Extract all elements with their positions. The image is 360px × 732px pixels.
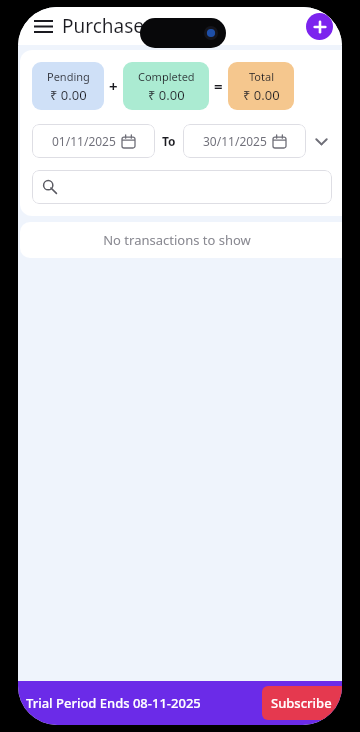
staticText: Total <box>249 69 274 84</box>
staticText: Trial Period Ends 08-11-2025 <box>26 694 201 712</box>
staticText: No transactions to show <box>103 231 251 249</box>
button[interactable]: 01/11/2025 <box>32 124 155 158</box>
button[interactable]: Subscribe <box>262 686 342 720</box>
button[interactable]: Total <box>228 62 294 110</box>
button[interactable]: Expand filters <box>306 126 336 156</box>
staticText: 30/11/2025 <box>203 133 267 149</box>
button[interactable]: Pending <box>32 62 104 110</box>
button[interactable]: Search <box>32 170 332 204</box>
staticText: Completed <box>138 69 195 84</box>
staticText: ₹ 0.00 <box>243 86 280 104</box>
staticText: = <box>214 76 223 96</box>
staticText: Purchase <box>62 13 145 39</box>
staticText: 01/11/2025 <box>52 133 116 149</box>
button[interactable]: Completed <box>123 62 209 110</box>
button[interactable]: No transactions to show <box>20 222 342 258</box>
button[interactable]: Add purchase <box>306 13 333 40</box>
staticText: To <box>162 133 176 149</box>
staticText: ₹ 0.00 <box>50 86 87 104</box>
staticText: + <box>109 76 118 96</box>
button[interactable]: Open navigation menu <box>26 9 60 43</box>
staticText: Pending <box>47 69 90 84</box>
staticText: ₹ 0.00 <box>148 86 185 104</box>
button[interactable]: 30/11/2025 <box>183 124 306 158</box>
staticText: Subscribe <box>271 694 332 712</box>
